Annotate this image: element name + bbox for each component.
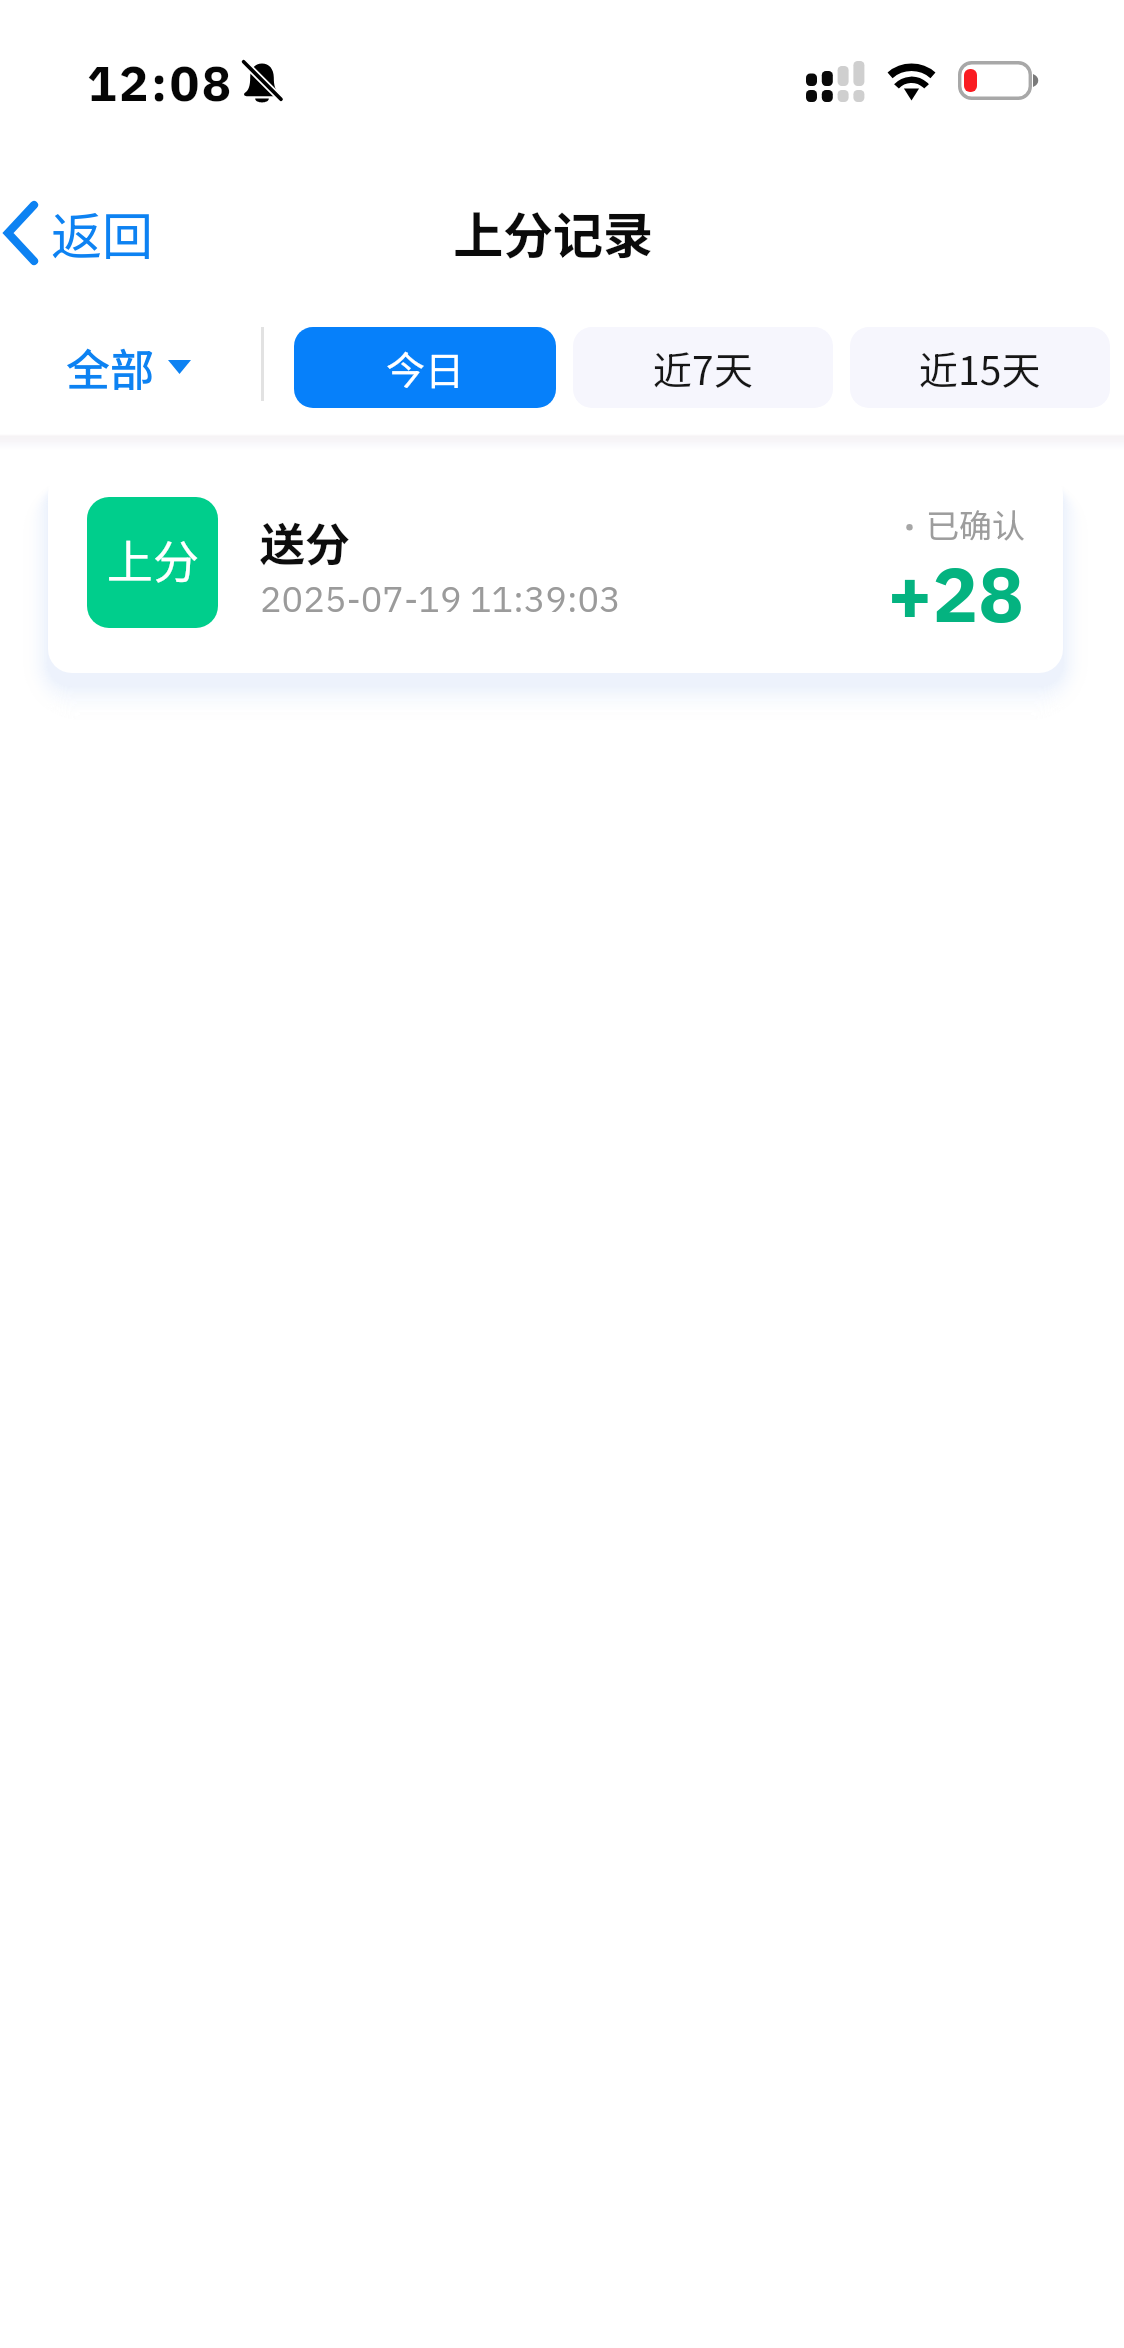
staticText: 上分 [107, 526, 199, 593]
staticText: 全部 [66, 335, 154, 399]
staticText: +28 [887, 544, 1024, 643]
staticText: 送分 [260, 509, 351, 574]
staticText: 近15天 [919, 340, 1041, 396]
staticText: 2025-07-19 11:39:03 [260, 575, 621, 622]
staticText: 上分记录 [453, 196, 653, 268]
staticText: 今日 [386, 340, 465, 396]
button[interactable]: 近7天 [573, 327, 833, 408]
button[interactable]: 全部，筛选类型 [46, 323, 211, 411]
staticText: 已确认 [926, 500, 1025, 548]
button[interactable]: 今日 [294, 327, 556, 408]
staticText: 12:08 [87, 51, 234, 115]
staticText: 返回 [51, 196, 154, 270]
staticText: 近7天 [653, 340, 753, 396]
button[interactable]: 近15天 [850, 327, 1110, 408]
button[interactable]: 返回 [0, 188, 178, 278]
button[interactable]: 上分 [48, 470, 1063, 673]
